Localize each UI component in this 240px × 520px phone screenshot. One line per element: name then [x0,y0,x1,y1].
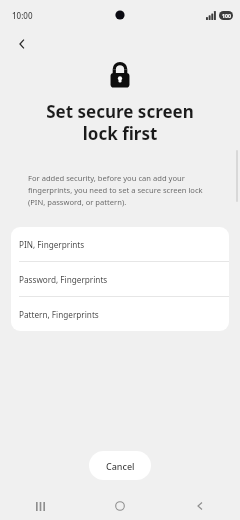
button[interactable]: Recent apps [0,492,80,520]
button[interactable]: Pattern, Fingerprints [11,297,229,331]
button[interactable]: Home [80,492,160,520]
staticText: 100 [222,12,231,19]
button[interactable]: Back [160,492,240,520]
staticText: Cancel [106,460,135,472]
staticText: 10:00 [12,10,33,21]
button[interactable]: Cancel [89,451,151,480]
button[interactable]: PIN, Fingerprints [11,227,229,262]
staticText: Set secure screen lock first [14,100,226,145]
staticText: Pattern, Fingerprints [19,309,99,320]
staticText: For added security, before you can add y… [28,173,218,208]
button[interactable]: Password, Fingerprints [11,262,229,297]
button[interactable]: Back [8,30,36,58]
staticText: Password, Fingerprints [19,274,108,285]
staticText: PIN, Fingerprints [19,239,85,250]
